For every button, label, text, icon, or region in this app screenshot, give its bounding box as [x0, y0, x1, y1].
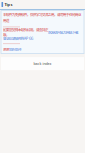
staticText: 欢迎访问官方网站下载 [48, 30, 78, 35]
staticText: 如果您觉得本软件好用，请支持正版， [3, 27, 48, 37]
staticText: 用途 [3, 18, 9, 23]
staticText: 本软件为免费软件，仅供学习交流之用，请勿用于任何商业 [3, 12, 81, 17]
staticText: Tips [5, 2, 13, 7]
staticText: 您的支持 [9, 47, 21, 52]
staticText: back index [33, 61, 51, 66]
staticText: 登录后请使用WAP GG [3, 36, 33, 41]
staticText: 谢谢 [3, 47, 9, 52]
button[interactable]: back index [1, 57, 84, 70]
